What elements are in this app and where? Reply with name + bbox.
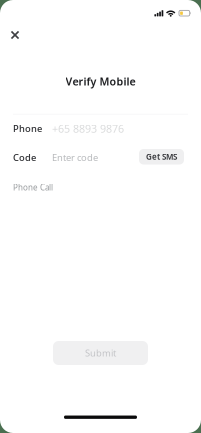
button[interactable]: Phone Call [13,181,63,194]
button[interactable]: Close [1,22,28,48]
staticText: Enter code [52,151,98,164]
staticText: Code [13,151,36,164]
staticText: Phone [13,122,42,135]
button[interactable]: Get SMS [139,149,184,164]
staticText: Submit [85,347,116,359]
staticText: +65 8893 9876 [52,121,124,136]
staticText: Verify Mobile [65,74,135,88]
staticText: Get SMS [146,151,177,162]
button[interactable]: Submit [53,341,148,365]
staticText: Phone Call [13,182,53,193]
